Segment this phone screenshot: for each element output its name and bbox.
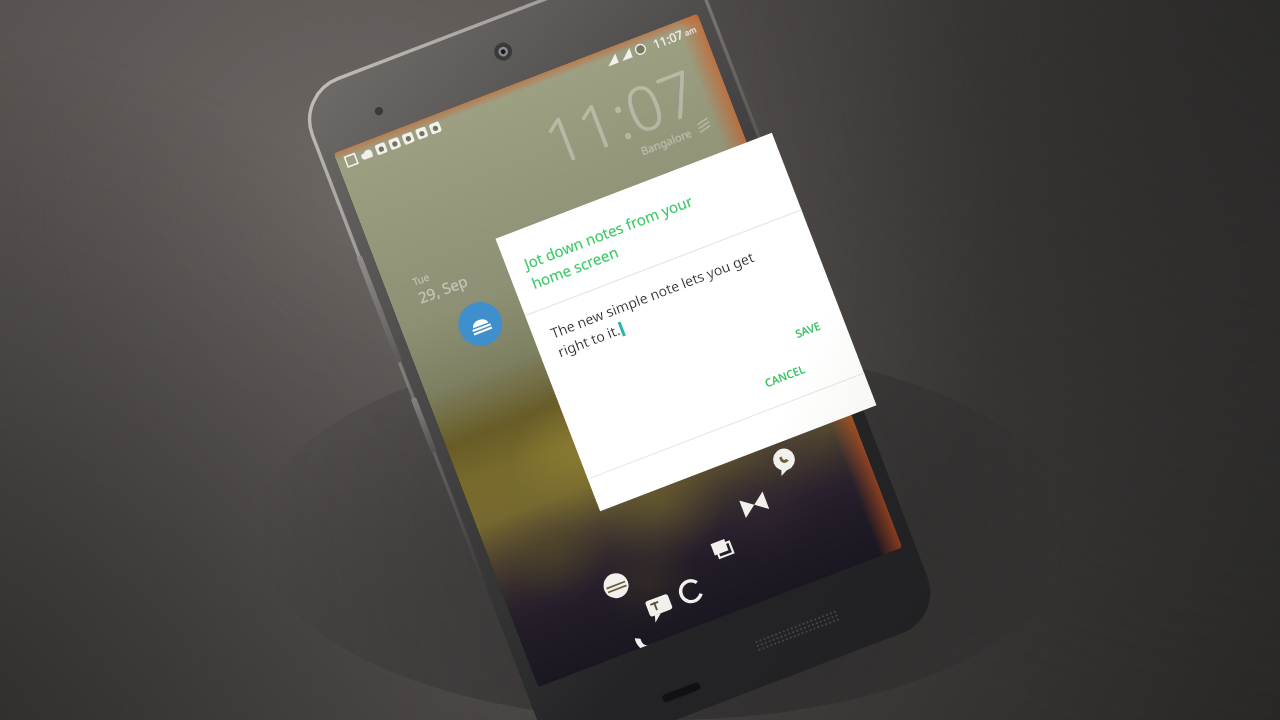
staticText: Tue bbox=[410, 270, 431, 289]
button[interactable]: SAVE bbox=[781, 307, 835, 352]
button[interactable]: 27 bbox=[657, 158, 734, 211]
staticText: 11:07 bbox=[651, 26, 685, 52]
button[interactable]: Phone bbox=[624, 621, 663, 651]
staticText: SAVE bbox=[793, 318, 822, 341]
staticText: 27 bbox=[657, 174, 692, 211]
button[interactable]: Messages bbox=[763, 439, 806, 483]
staticText: am bbox=[682, 23, 698, 38]
button[interactable]: Media bbox=[732, 483, 776, 527]
button[interactable]: Food bbox=[594, 564, 638, 608]
button[interactable]: Jot down notes from your home screen bbox=[495, 133, 876, 511]
button[interactable]: 11:07 bbox=[343, 38, 748, 286]
staticText: 30°/22° bbox=[686, 164, 720, 187]
button[interactable]: Tue bbox=[410, 257, 471, 308]
staticText: CANCEL bbox=[762, 361, 807, 390]
staticText: 29, Sep bbox=[415, 270, 471, 307]
staticText: The new simple note lets you get right t… bbox=[548, 247, 764, 361]
button[interactable]: CANCEL bbox=[750, 350, 819, 401]
button[interactable]: Chat bbox=[639, 585, 683, 629]
button[interactable]: Camera bbox=[794, 393, 838, 437]
button[interactable]: Browser bbox=[669, 569, 713, 613]
button[interactable]: Gallery bbox=[702, 527, 746, 570]
staticText: 11:07 bbox=[532, 48, 709, 183]
button[interactable]: Quick note bbox=[452, 295, 509, 352]
staticText: Bangalore bbox=[638, 125, 694, 158]
staticText: Jot down notes from your home screen bbox=[521, 190, 703, 294]
